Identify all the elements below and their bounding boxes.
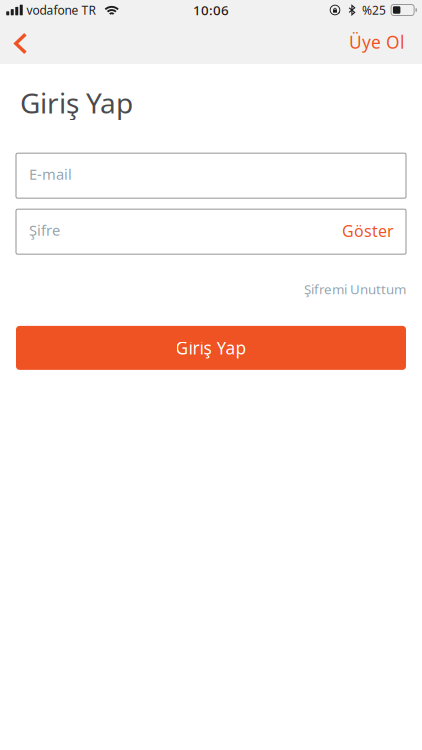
staticText: vodafone TR <box>26 2 95 18</box>
staticText: E-mail <box>29 164 72 184</box>
button[interactable]: Göster <box>342 221 394 242</box>
staticText: Giriş Yap <box>20 84 133 121</box>
button[interactable]: Üye Ol <box>333 16 422 67</box>
staticText: %25 <box>362 2 386 18</box>
staticText: Şifre <box>29 220 60 240</box>
staticText: 10:06 <box>193 1 229 19</box>
button[interactable]: Giriş Yap <box>16 326 406 370</box>
staticText: Giriş Yap <box>175 336 246 359</box>
staticText: Üye Ol <box>349 30 404 53</box>
staticText: Şifremi Unuttum <box>304 280 406 298</box>
button[interactable]: Back <box>0 21 43 62</box>
staticText: Göster <box>342 220 394 241</box>
button[interactable]: Şifremi Unuttum <box>304 278 406 296</box>
